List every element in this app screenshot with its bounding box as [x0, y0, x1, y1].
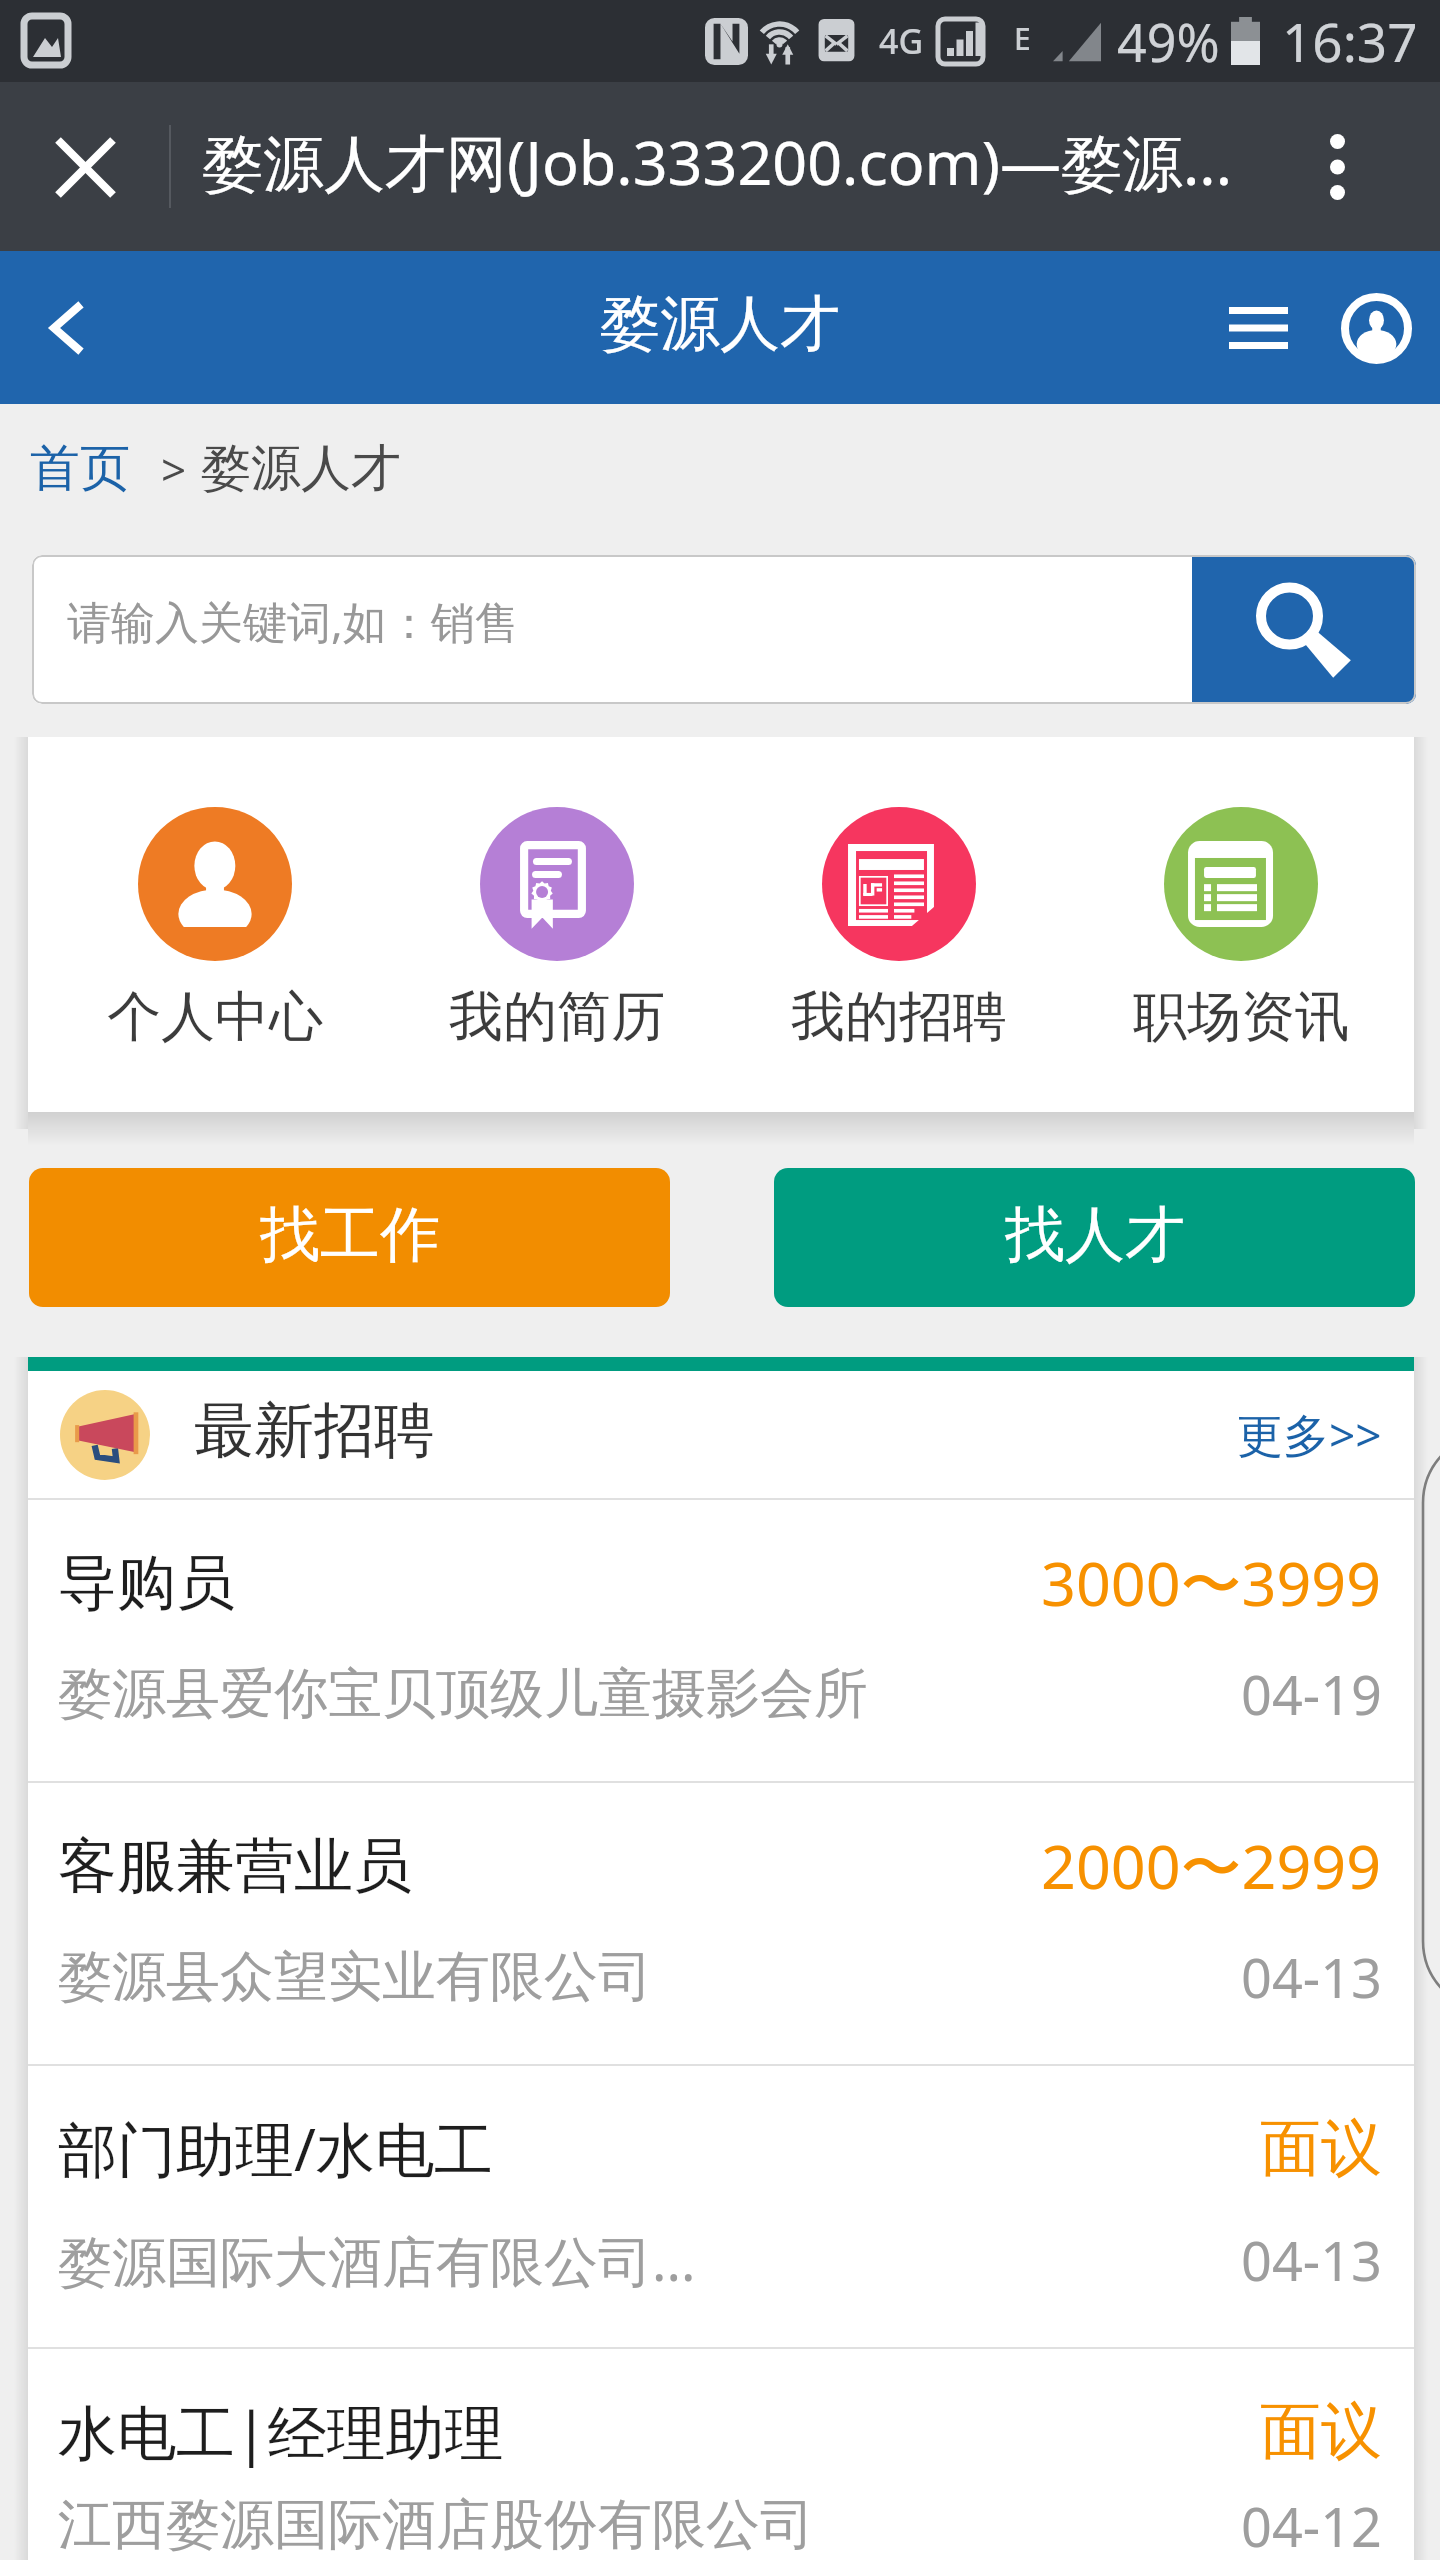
staticText: 婺源县爱你宝贝顶级儿童摄影会所: [58, 1660, 868, 1728]
button[interactable]: Account: [1324, 276, 1428, 380]
staticText: 04-13: [1241, 2223, 1382, 2297]
staticText: 导购员: [58, 1546, 235, 1620]
button[interactable]: Menu: [1206, 276, 1310, 380]
button[interactable]: 首页: [30, 437, 130, 500]
staticText: 婺源国际大酒店有限公司...: [58, 2223, 696, 2297]
button[interactable]: 职场资讯: [1070, 807, 1412, 1051]
staticText: 面议: [1260, 2393, 1382, 2470]
button[interactable]: 找人才: [774, 1168, 1415, 1307]
staticText: >: [161, 439, 187, 499]
staticText: 最新招聘: [194, 1393, 434, 1469]
staticText: 4G: [879, 18, 924, 64]
staticText: 我的简历: [449, 983, 665, 1051]
button[interactable]: Search: [1192, 555, 1416, 704]
staticText: 16:37: [1282, 5, 1418, 77]
button[interactable]: 最新招聘: [28, 1371, 1414, 1498]
staticText: 职场资讯: [1133, 983, 1349, 1051]
staticText: 江西婺源国际酒店股份有限公司: [58, 2491, 814, 2559]
button[interactable]: 导购员: [28, 1500, 1414, 1781]
staticText: 找工作: [260, 1197, 440, 1273]
staticText: 04-13: [1241, 1940, 1382, 2014]
button[interactable]: 水电工|经理助理: [28, 2349, 1414, 2560]
staticText: 请输入关键词,如：销售: [67, 591, 519, 651]
staticText: 水电工|经理助理: [58, 2391, 504, 2472]
button[interactable]: 我的招聘: [728, 807, 1070, 1051]
button[interactable]: 部门助理/水电工: [28, 2066, 1414, 2347]
staticText: 04-19: [1241, 1657, 1382, 1731]
staticText: 我的招聘: [791, 983, 1007, 1051]
button[interactable]: Close: [30, 112, 140, 222]
staticText: 婺源人才网(Job.333200.com)—婺源...: [202, 120, 1232, 203]
staticText: 3000〜3999: [1041, 1541, 1382, 1624]
staticText: 婺源人才: [600, 286, 840, 362]
button[interactable]: Back: [23, 285, 109, 371]
staticText: 2000〜2999: [1041, 1824, 1382, 1907]
staticText: 婺源县众望实业有限公司: [58, 1943, 652, 2011]
staticText: 面议: [1260, 2110, 1382, 2187]
staticText: 找人才: [1005, 1197, 1185, 1273]
staticText: 更多>>: [1237, 1403, 1382, 1466]
button[interactable]: 我的简历: [386, 807, 728, 1051]
staticText: 客服兼营业员: [58, 1829, 412, 1903]
button[interactable]: 客服兼营业员: [28, 1783, 1414, 2064]
staticText: 婺源人才: [201, 437, 401, 500]
staticText: 49%: [1117, 6, 1220, 77]
button[interactable]: 找工作: [29, 1168, 670, 1307]
button[interactable]: 个人中心: [44, 807, 386, 1051]
button[interactable]: More options: [1282, 112, 1392, 222]
staticText: 个人中心: [107, 983, 323, 1051]
staticText: E: [1014, 18, 1031, 59]
staticText: 04-12: [1241, 2489, 1382, 2560]
staticText: 部门助理/水电工: [58, 2108, 493, 2189]
